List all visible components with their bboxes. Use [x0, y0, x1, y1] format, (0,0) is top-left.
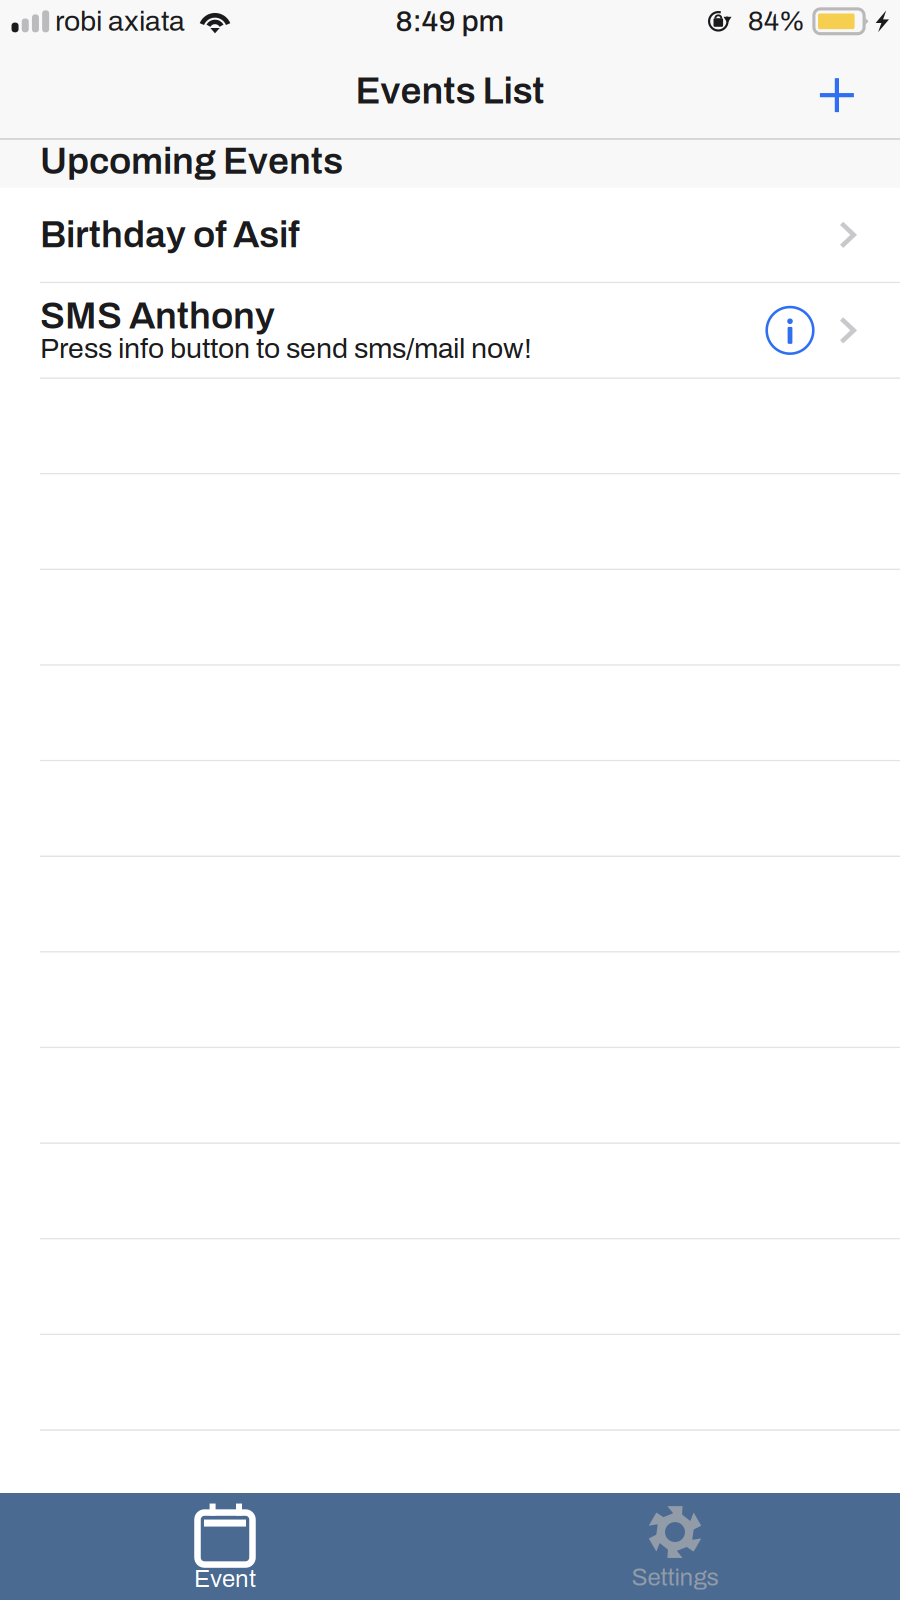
- staticText: SMS Anthony: [40, 300, 275, 332]
- button[interactable]: Event: [0, 1493, 450, 1600]
- button[interactable]: Settings: [450, 1493, 900, 1600]
- button[interactable]: SMS Anthony: [0, 283, 900, 379]
- staticText: Settings: [631, 1567, 718, 1588]
- staticText: 8:49 pm: [395, 8, 504, 34]
- staticText: Press info button to send sms/mail now!: [40, 336, 532, 361]
- staticText: Birthday of Asif: [40, 219, 299, 251]
- staticText: Event: [194, 1569, 256, 1589]
- staticText: robi axiata: [55, 9, 185, 34]
- staticText: 84%: [748, 9, 805, 33]
- staticText: Events List: [355, 75, 544, 107]
- button[interactable]: Add event: [795, 53, 879, 137]
- staticText: Upcoming Events: [40, 145, 343, 178]
- button[interactable]: Birthday of Asif: [0, 188, 900, 283]
